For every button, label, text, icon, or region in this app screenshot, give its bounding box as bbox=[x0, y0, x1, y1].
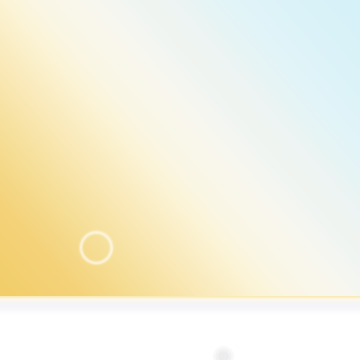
button[interactable]: Select bbox=[81, 232, 112, 263]
